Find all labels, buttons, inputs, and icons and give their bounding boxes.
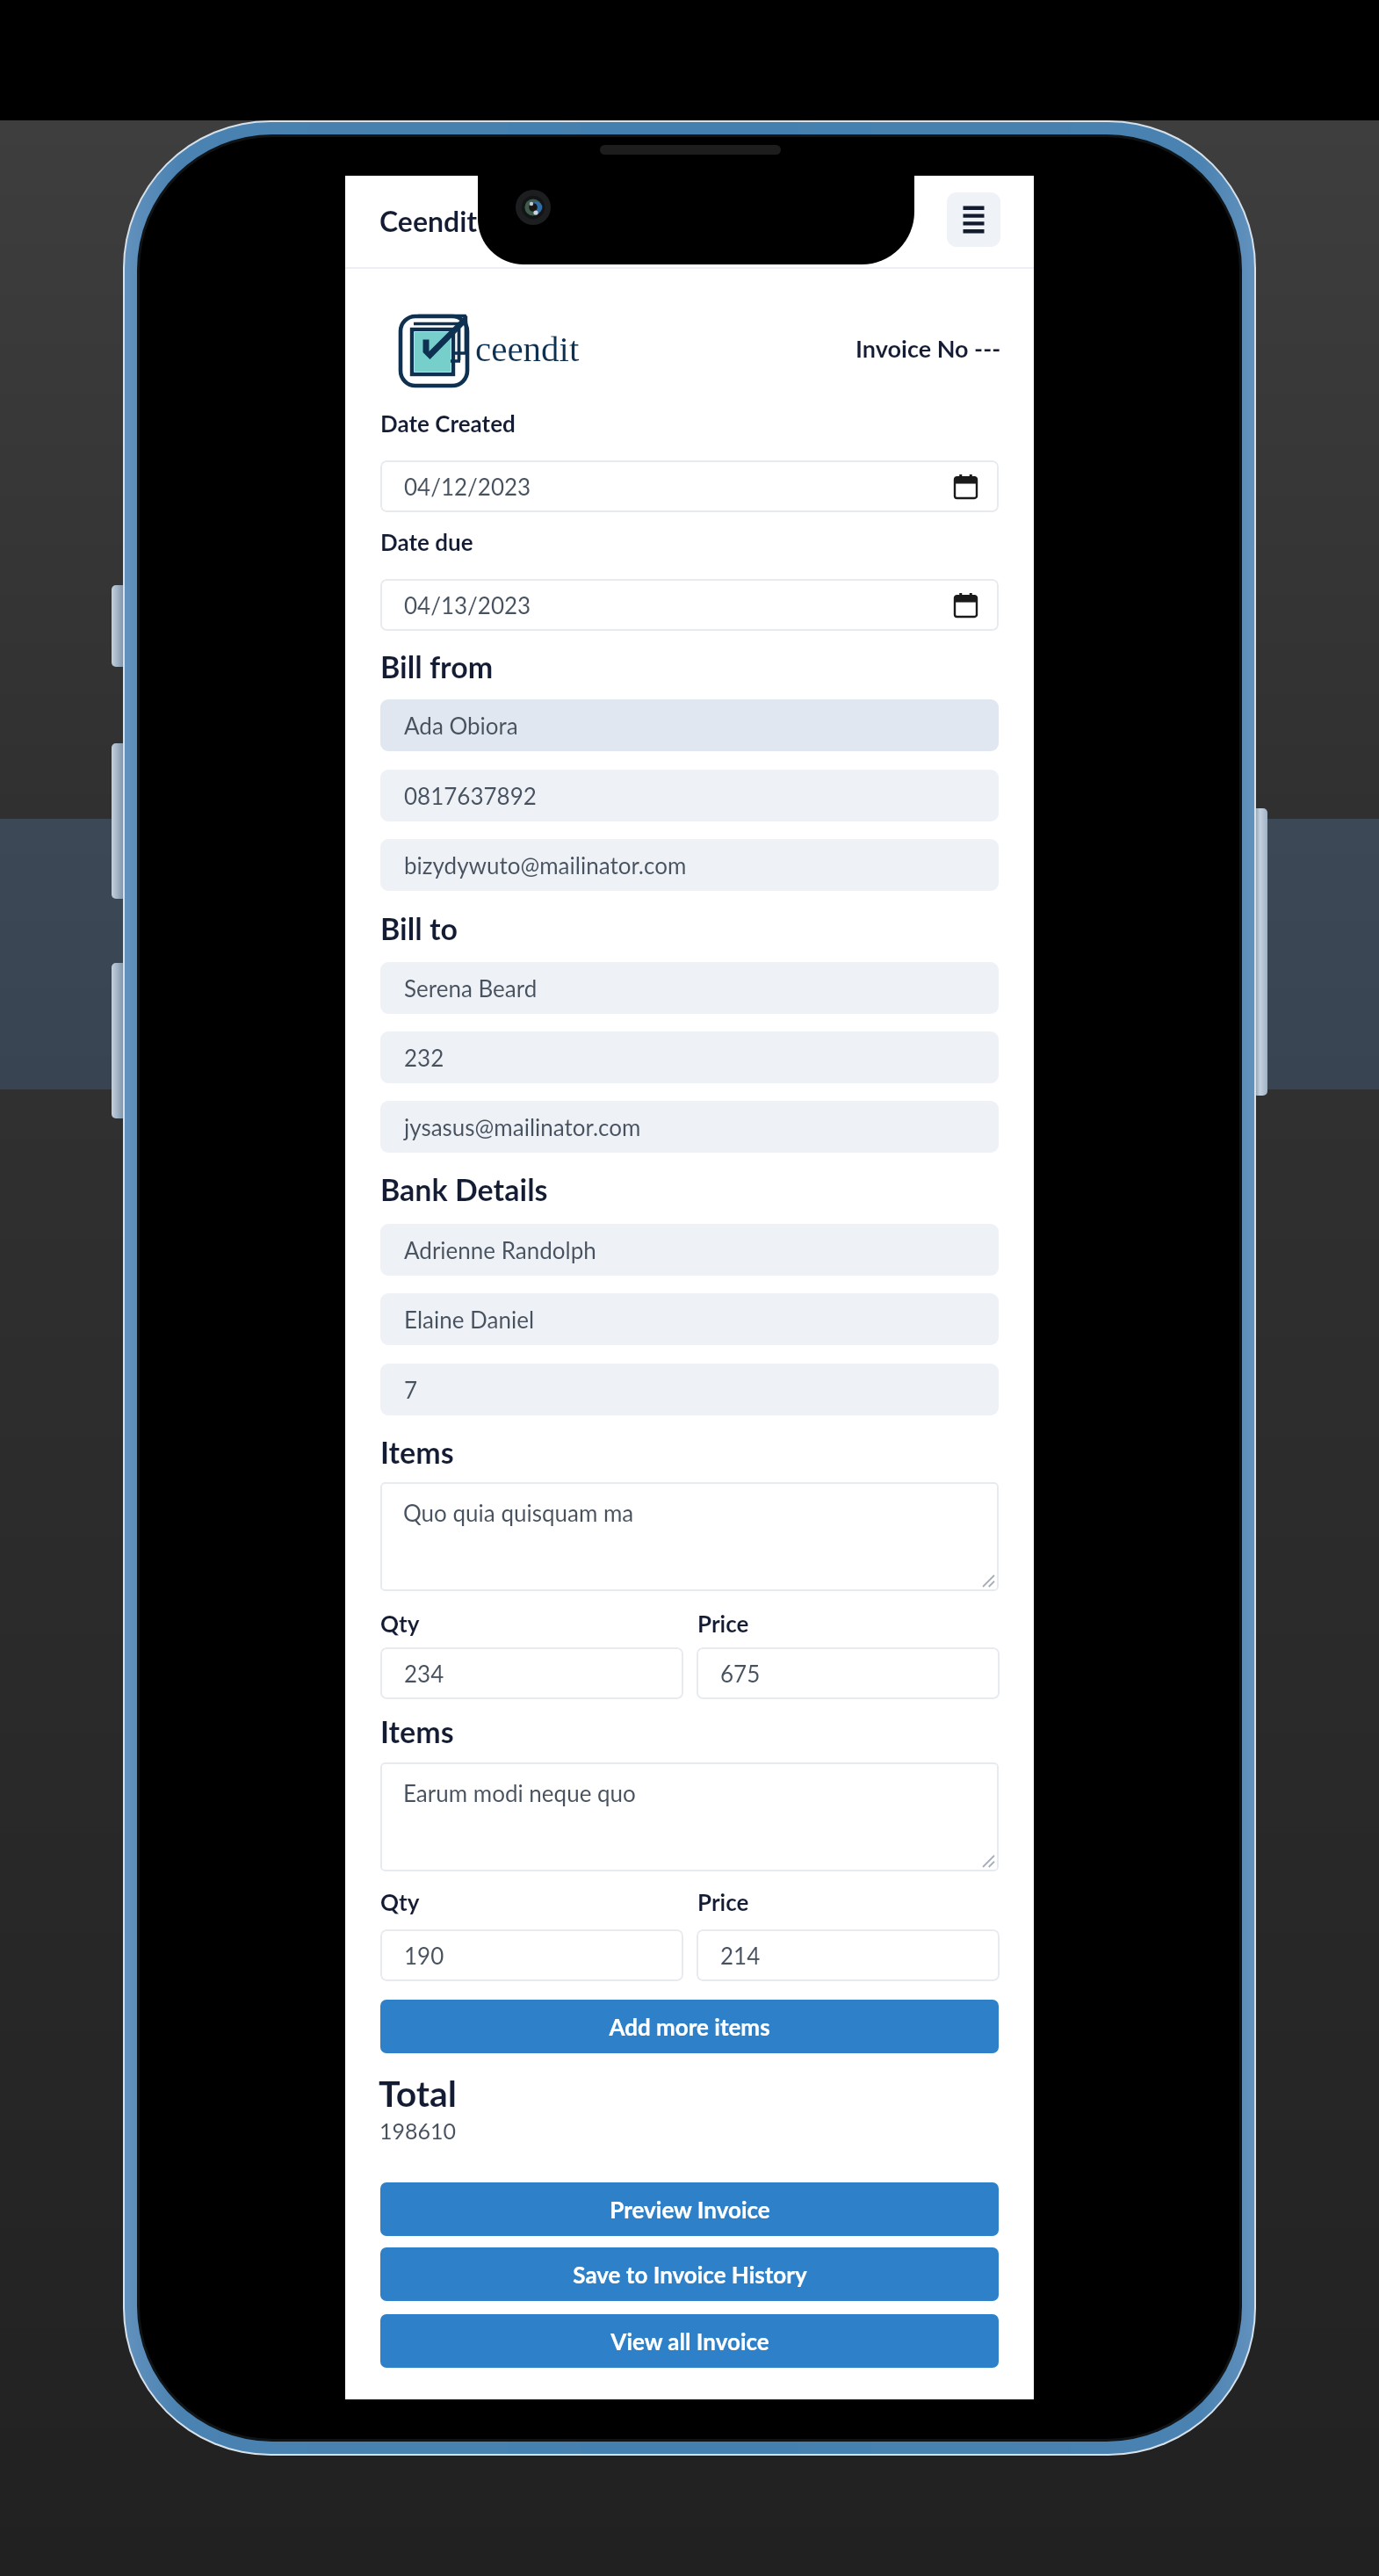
staticText: Ceendit (379, 204, 478, 237)
button[interactable]: 04/13/2023 (380, 579, 999, 631)
button[interactable]: Earum modi neque quo (380, 1762, 999, 1871)
staticText: 04/13/2023 (404, 591, 531, 619)
button[interactable]: Ada Obiora (380, 699, 999, 751)
staticText: 0817637892 (404, 782, 537, 809)
staticText: 190 (404, 1942, 444, 1969)
button[interactable]: 232 (380, 1031, 999, 1083)
staticText: ceendit (475, 329, 580, 368)
staticText: Adrienne Randolph (404, 1236, 596, 1263)
staticText: Qty (380, 1888, 420, 1915)
staticText: Quo quia quisquam ma (403, 1499, 634, 1526)
staticText: Price (697, 1888, 749, 1915)
staticText: Add more items (609, 2013, 770, 2040)
button[interactable]: Add more items (380, 2000, 999, 2053)
button[interactable]: 214 (697, 1929, 1000, 1981)
staticText: Bill to (380, 910, 458, 946)
button[interactable]: View all Invoice (380, 2314, 999, 2368)
staticText: Items (380, 1434, 454, 1470)
staticText: Bill from (380, 648, 494, 684)
button[interactable]: jysasus@mailinator.com (380, 1101, 999, 1153)
staticText: 198610 (379, 2117, 457, 2144)
button[interactable]: 234 (380, 1647, 683, 1699)
button[interactable]: bizydywuto@mailinator.com (380, 839, 999, 891)
staticText: Serena Beard (404, 974, 538, 1002)
staticText: jysasus@mailinator.com (404, 1113, 641, 1140)
button[interactable]: Quo quia quisquam ma (380, 1482, 999, 1591)
staticText: Elaine Daniel (404, 1306, 535, 1333)
staticText: Date due (380, 528, 473, 555)
staticText: Ada Obiora (404, 712, 518, 739)
button[interactable]: Serena Beard (380, 962, 999, 1014)
staticText: Earum modi neque quo (403, 1779, 636, 1806)
staticText: 234 (404, 1660, 444, 1687)
staticText: Invoice No --- (856, 334, 1001, 362)
staticText: 675 (720, 1660, 761, 1687)
button[interactable]: Save to Invoice History (380, 2247, 999, 2301)
button[interactable]: 0817637892 (380, 770, 999, 821)
staticText: Items (380, 1713, 454, 1749)
staticText: View all Invoice (610, 2327, 769, 2355)
staticText: Date Created (380, 409, 516, 437)
staticText: Save to Invoice History (573, 2261, 807, 2288)
button[interactable]: 04/12/2023 (380, 460, 999, 512)
staticText: 214 (720, 1942, 761, 1969)
staticText: Bank Details (380, 1171, 548, 1207)
staticText: Qty (380, 1610, 420, 1637)
staticText: 04/12/2023 (404, 473, 531, 500)
button[interactable]: 7 (380, 1364, 999, 1415)
staticText: Total (379, 2072, 458, 2115)
button[interactable]: 190 (380, 1929, 683, 1981)
button[interactable]: 675 (697, 1647, 1000, 1699)
button[interactable]: Preview Invoice (380, 2182, 999, 2236)
button[interactable]: Elaine Daniel (380, 1293, 999, 1345)
staticText: Preview Invoice (610, 2196, 770, 2223)
staticText: 232 (404, 1044, 444, 1071)
button[interactable]: Menu (947, 192, 1000, 247)
staticText: Price (697, 1610, 749, 1637)
button[interactable]: Adrienne Randolph (380, 1224, 999, 1276)
staticText: 7 (404, 1376, 418, 1403)
staticText: bizydywuto@mailinator.com (404, 851, 687, 879)
